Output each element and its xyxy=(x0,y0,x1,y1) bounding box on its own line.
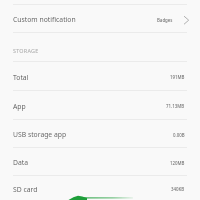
staticText: Custom notification xyxy=(13,15,76,24)
staticText: App xyxy=(13,102,26,111)
staticText: 120MB xyxy=(170,160,185,166)
button[interactable]: Custom notification xyxy=(0,5,200,32)
staticText: USB storage app xyxy=(13,130,67,139)
other: Open badges settings xyxy=(183,13,190,25)
button[interactable]: Total xyxy=(0,62,200,90)
staticText: Total xyxy=(13,73,29,82)
staticText: Badges xyxy=(157,17,173,23)
button[interactable]: USB storage app xyxy=(0,120,200,147)
button[interactable]: Data xyxy=(0,148,200,175)
staticText: 191MB xyxy=(170,74,185,80)
button[interactable]: SD card xyxy=(0,176,200,200)
staticText: Data xyxy=(13,158,29,167)
staticText: 71.13MB xyxy=(166,103,185,109)
staticText: 0.00B xyxy=(173,132,185,138)
staticText: 340KB xyxy=(171,186,185,192)
staticText: STORAGE xyxy=(13,47,39,54)
staticText: SD card xyxy=(13,185,38,194)
button[interactable]: App xyxy=(0,91,200,119)
